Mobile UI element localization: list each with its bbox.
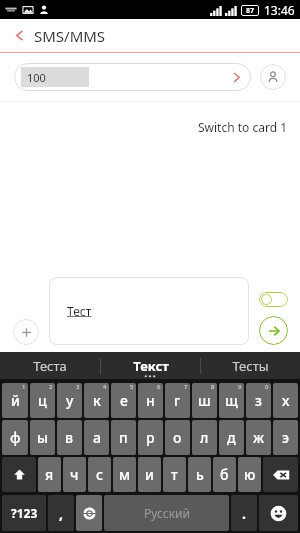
staticText: SMS/MMS bbox=[34, 26, 106, 46]
staticText: щ bbox=[225, 391, 238, 410]
staticText: г bbox=[174, 391, 181, 410]
staticText: 4 bbox=[103, 383, 107, 391]
button[interactable]: х bbox=[273, 383, 298, 418]
staticText: Тесты bbox=[232, 357, 269, 375]
staticText: ь bbox=[196, 465, 204, 484]
button[interactable]: ь bbox=[188, 457, 211, 492]
button[interactable]: щ bbox=[219, 383, 244, 418]
staticText: 7 bbox=[184, 383, 188, 391]
button[interactable]: Add attachment bbox=[13, 319, 39, 345]
staticText: ц bbox=[38, 391, 47, 410]
button[interactable]: с bbox=[88, 457, 111, 492]
staticText: Текст bbox=[133, 357, 169, 375]
staticText: к bbox=[93, 391, 101, 410]
staticText: и bbox=[145, 465, 154, 484]
button[interactable]: а bbox=[84, 420, 109, 455]
staticText: 100 bbox=[27, 70, 46, 85]
button[interactable]: о bbox=[165, 420, 190, 455]
staticText: , bbox=[59, 504, 63, 523]
button[interactable]: Contacts bbox=[260, 64, 286, 90]
button[interactable]: Теста bbox=[0, 352, 100, 379]
button[interactable]: Toggle card bbox=[259, 292, 288, 307]
staticText: ю bbox=[244, 465, 256, 484]
staticText: р bbox=[146, 428, 155, 447]
button[interactable]: д bbox=[219, 420, 244, 455]
button[interactable]: ш bbox=[192, 383, 217, 418]
button[interactable]: и bbox=[138, 457, 161, 492]
button[interactable]: е bbox=[111, 383, 136, 418]
staticText: й bbox=[11, 391, 20, 410]
button[interactable]: н bbox=[138, 383, 163, 418]
staticText: ф bbox=[10, 428, 21, 447]
staticText: Тест bbox=[67, 303, 92, 319]
staticText: ч bbox=[70, 465, 79, 484]
button[interactable]: ц bbox=[30, 383, 55, 418]
button[interactable]: в bbox=[57, 420, 82, 455]
button[interactable]: 100 bbox=[14, 63, 251, 91]
button[interactable]: б bbox=[213, 457, 236, 492]
button[interactable]: Send bbox=[259, 316, 288, 345]
button[interactable]: ж bbox=[246, 420, 271, 455]
button[interactable]: Back bbox=[0, 19, 300, 52]
staticText: Switch to card 1 bbox=[198, 119, 288, 135]
staticText: 6 bbox=[157, 383, 161, 391]
staticText: ?123 bbox=[11, 505, 38, 521]
button[interactable]: ю bbox=[238, 457, 261, 492]
button[interactable]: ы bbox=[30, 420, 55, 455]
staticText: 2 bbox=[49, 383, 53, 391]
staticText: э bbox=[282, 428, 290, 447]
button[interactable]: Emoji bbox=[259, 495, 298, 531]
button[interactable]: Текст bbox=[101, 352, 200, 379]
staticText: 13:46 bbox=[264, 2, 295, 18]
button[interactable]: я bbox=[38, 457, 61, 492]
staticText: з bbox=[255, 391, 262, 410]
staticText: 9 bbox=[238, 383, 242, 391]
button[interactable]: р bbox=[138, 420, 163, 455]
staticText: 8 bbox=[211, 383, 215, 391]
staticText: 87 bbox=[246, 6, 255, 16]
button[interactable]: , bbox=[48, 495, 74, 531]
staticText: е bbox=[120, 391, 128, 410]
button[interactable]: ч bbox=[63, 457, 86, 492]
button[interactable]: ?123 bbox=[2, 495, 46, 531]
staticText: ж bbox=[253, 428, 265, 447]
staticText: а bbox=[93, 428, 101, 447]
button[interactable]: ф bbox=[2, 420, 28, 455]
staticText: ы bbox=[37, 428, 49, 447]
button[interactable]: й bbox=[2, 383, 28, 418]
staticText: н bbox=[146, 391, 155, 410]
staticText: в bbox=[65, 428, 74, 447]
button[interactable]: г bbox=[165, 383, 190, 418]
staticText: Теста bbox=[33, 357, 67, 375]
staticText: 0 bbox=[265, 383, 269, 391]
button[interactable]: Русский bbox=[104, 495, 229, 531]
staticText: х bbox=[282, 391, 290, 410]
staticText: ш bbox=[198, 391, 211, 410]
staticText: т bbox=[171, 465, 178, 484]
button[interactable]: к bbox=[84, 383, 109, 418]
button[interactable]: Тест bbox=[49, 277, 249, 345]
staticText: п bbox=[119, 428, 128, 447]
button[interactable]: Switch to card 1 bbox=[189, 115, 297, 139]
button[interactable]: л bbox=[192, 420, 217, 455]
staticText: 5 bbox=[130, 383, 134, 391]
button[interactable]: т bbox=[163, 457, 186, 492]
button[interactable]: Change language bbox=[76, 495, 102, 531]
other: Back bbox=[14, 30, 25, 41]
button[interactable]: Shift bbox=[2, 457, 36, 492]
staticText: я bbox=[45, 465, 54, 484]
button[interactable]: Backspace bbox=[263, 457, 298, 492]
staticText: о bbox=[173, 428, 182, 447]
staticText: . bbox=[242, 504, 246, 523]
button[interactable]: п bbox=[111, 420, 136, 455]
staticText: д bbox=[227, 428, 236, 447]
button[interactable]: Тесты bbox=[201, 352, 300, 379]
staticText: м bbox=[119, 465, 131, 484]
staticText: Русский bbox=[144, 505, 190, 521]
button[interactable]: у bbox=[57, 383, 82, 418]
staticText: б bbox=[220, 465, 229, 484]
button[interactable]: м bbox=[113, 457, 136, 492]
button[interactable]: з bbox=[246, 383, 271, 418]
button[interactable]: э bbox=[273, 420, 298, 455]
button[interactable]: . bbox=[231, 495, 257, 531]
